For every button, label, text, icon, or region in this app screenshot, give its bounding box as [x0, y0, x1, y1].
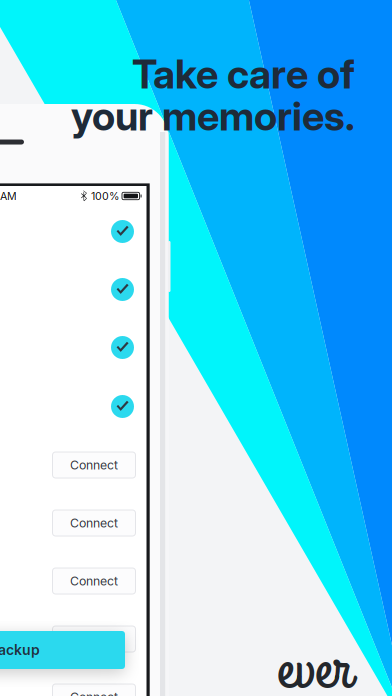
staticText: Connect	[70, 516, 118, 530]
staticText: Connect	[70, 690, 118, 696]
button[interactable]: Backup	[0, 631, 125, 669]
button[interactable]: Connect	[52, 626, 135, 652]
button[interactable]: Connect	[52, 568, 135, 594]
button[interactable]: Connect	[52, 684, 135, 696]
staticText: Take care of	[132, 50, 355, 98]
staticText: 100%	[91, 189, 119, 202]
staticText: ever	[277, 628, 352, 696]
staticText: your memories.	[71, 92, 355, 140]
staticText: Connect	[70, 574, 118, 588]
button[interactable]: Connect	[52, 510, 135, 536]
button[interactable]: Connect	[52, 452, 135, 478]
staticText: 9:47 AM	[0, 189, 17, 202]
staticText: Connect	[70, 458, 118, 472]
staticText: Backup	[0, 641, 40, 658]
